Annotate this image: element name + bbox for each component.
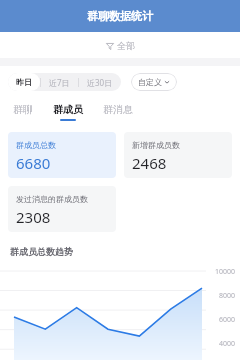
staticText: 群聊 <box>13 103 33 116</box>
button[interactable]: 群成员 <box>50 102 86 122</box>
staticText: 近7日 <box>49 77 70 88</box>
staticText: 自定义 <box>138 77 162 87</box>
other: Filter <box>106 42 114 50</box>
staticText: 10000 <box>215 267 236 277</box>
staticText: 6000 <box>219 315 236 325</box>
staticText: 新增群成员数 <box>132 140 180 150</box>
button[interactable]: Filter <box>0 32 240 58</box>
staticText: 昨日 <box>16 77 32 87</box>
button[interactable]: 近7日 <box>41 73 78 91</box>
staticText: 8000 <box>219 291 236 301</box>
button[interactable]: 新增群成员数 <box>124 132 232 178</box>
staticText: 群成员总数 <box>16 140 56 150</box>
button[interactable]: 发过消息的群成员数 <box>8 186 116 232</box>
staticText: 2308 <box>16 207 51 227</box>
staticText: 近30日 <box>87 77 113 88</box>
staticText: 2468 <box>132 153 167 173</box>
button[interactable]: 群消息 <box>100 102 136 122</box>
staticText: 群成员总数趋势 <box>10 246 73 257</box>
staticText: 4000 <box>219 339 236 349</box>
staticText: 6680 <box>16 153 51 173</box>
staticText: 发过消息的群成员数 <box>16 194 88 204</box>
staticText: 群消息 <box>103 103 133 116</box>
button[interactable]: 群成员总数 <box>8 132 116 178</box>
staticText: 全部 <box>117 40 135 51</box>
staticText: 群成员 <box>53 103 83 116</box>
button[interactable]: 近30日 <box>79 73 121 91</box>
button[interactable]: 群聊 <box>10 102 36 122</box>
staticText: 群聊数据统计 <box>87 9 153 23</box>
button[interactable]: 自定义 <box>131 73 177 91</box>
button[interactable]: 昨日 <box>8 73 40 91</box>
